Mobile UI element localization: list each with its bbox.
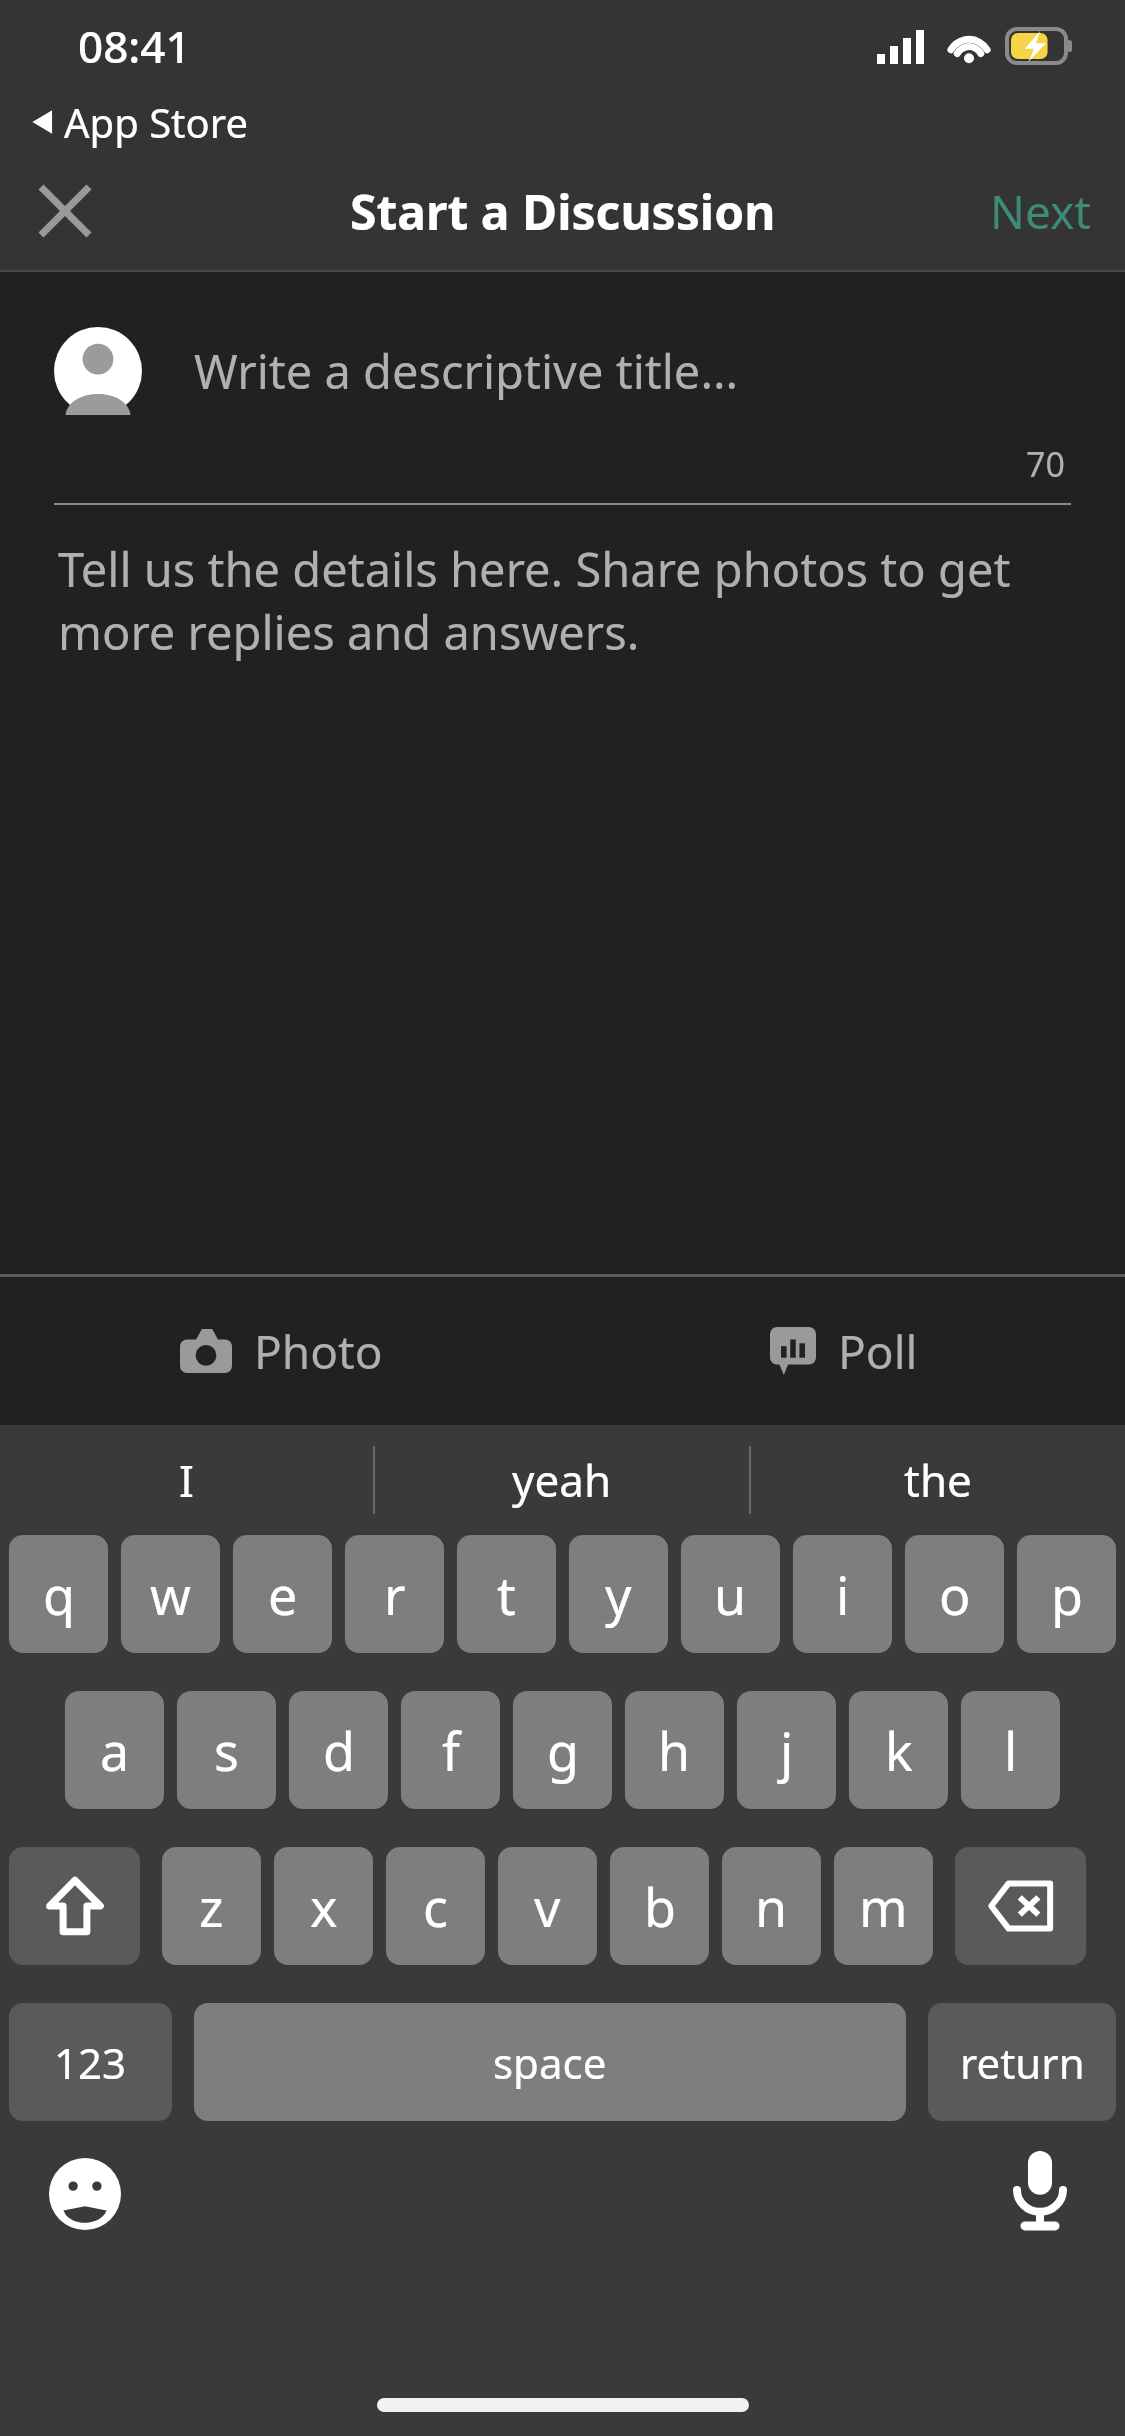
staticText: q	[43, 1559, 75, 1630]
staticText: k	[885, 1715, 913, 1786]
button[interactable]: Backspace	[955, 1847, 1086, 1965]
staticText: d	[323, 1715, 355, 1786]
staticText: i	[836, 1559, 850, 1630]
button[interactable]: j	[737, 1691, 836, 1809]
staticText: t	[497, 1559, 516, 1630]
staticText: v	[534, 1871, 561, 1942]
staticText: u	[714, 1559, 747, 1630]
staticText: w	[150, 1559, 191, 1630]
button[interactable]: Dictation	[997, 2147, 1083, 2233]
staticText: Start a Discussion	[350, 179, 776, 244]
staticText: p	[1051, 1559, 1083, 1630]
button[interactable]: k	[849, 1691, 948, 1809]
button[interactable]: y	[569, 1535, 668, 1653]
button[interactable]: r	[345, 1535, 444, 1653]
button[interactable]: i	[793, 1535, 892, 1653]
button[interactable]: w	[121, 1535, 220, 1653]
staticText: f	[442, 1715, 460, 1786]
button[interactable]: Back to App Store	[30, 92, 1125, 152]
staticText: z	[199, 1871, 224, 1942]
button[interactable]: a	[65, 1691, 164, 1809]
button[interactable]: Next	[990, 180, 1091, 243]
staticText: space	[493, 2034, 607, 2091]
staticText: Tell us the details here. Share photos t…	[58, 537, 1055, 664]
staticText: App Store	[64, 95, 249, 149]
staticText: Photo	[254, 1320, 383, 1383]
button[interactable]: Poll	[562, 1277, 1125, 1425]
staticText: a	[100, 1715, 130, 1786]
staticText: m	[859, 1871, 908, 1942]
staticText: e	[268, 1559, 298, 1630]
staticText: 70	[0, 441, 1065, 487]
staticText: the	[904, 1450, 972, 1510]
button[interactable]: g	[513, 1691, 612, 1809]
button[interactable]: m	[834, 1847, 933, 1965]
button[interactable]: c	[386, 1847, 485, 1965]
button[interactable]: Close	[20, 166, 110, 256]
staticText: Poll	[838, 1320, 918, 1383]
staticText: b	[644, 1871, 676, 1942]
staticText: y	[605, 1559, 632, 1630]
button[interactable]: 123	[9, 2003, 172, 2121]
staticText: r	[384, 1559, 406, 1630]
staticText: o	[939, 1559, 971, 1630]
button[interactable]: e	[233, 1535, 332, 1653]
button[interactable]: h	[625, 1691, 724, 1809]
button[interactable]: t	[457, 1535, 556, 1653]
staticText: h	[658, 1715, 691, 1786]
button[interactable]: the	[751, 1425, 1125, 1535]
staticText: x	[310, 1871, 338, 1942]
button[interactable]: v	[498, 1847, 597, 1965]
staticText: l	[1004, 1715, 1018, 1786]
staticText: return	[960, 2034, 1085, 2091]
button[interactable]: p	[1017, 1535, 1116, 1653]
staticText: s	[214, 1715, 239, 1786]
staticText: Next	[990, 180, 1091, 243]
staticText: 08:41	[78, 16, 191, 76]
other: Back to App Store	[30, 108, 54, 136]
button[interactable]: b	[610, 1847, 709, 1965]
button[interactable]: q	[9, 1535, 108, 1653]
button[interactable]: Emoji	[42, 2151, 128, 2237]
staticText: g	[547, 1715, 579, 1786]
button[interactable]: s	[177, 1691, 276, 1809]
button[interactable]: u	[681, 1535, 780, 1653]
button[interactable]: I	[0, 1425, 373, 1535]
staticText: c	[423, 1871, 448, 1942]
button[interactable]: return	[928, 2003, 1116, 2121]
staticText: Write a descriptive title...	[194, 339, 739, 403]
button[interactable]: space	[194, 2003, 906, 2121]
staticText: I	[179, 1450, 194, 1510]
staticText: n	[755, 1871, 788, 1942]
button[interactable]: o	[905, 1535, 1004, 1653]
staticText: j	[780, 1715, 794, 1786]
button[interactable]: x	[274, 1847, 373, 1965]
button[interactable]: d	[289, 1691, 388, 1809]
staticText: 123	[54, 2034, 127, 2091]
button[interactable]: yeah	[375, 1425, 749, 1535]
button[interactable]: z	[162, 1847, 261, 1965]
button[interactable]: n	[722, 1847, 821, 1965]
button[interactable]: Shift	[9, 1847, 140, 1965]
button[interactable]: l	[961, 1691, 1060, 1809]
staticText: yeah	[512, 1450, 612, 1510]
button[interactable]: Photo	[0, 1277, 562, 1425]
button[interactable]: f	[401, 1691, 500, 1809]
